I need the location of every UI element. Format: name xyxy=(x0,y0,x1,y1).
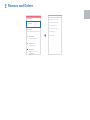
other: Logo xyxy=(5,4,7,8)
staticText: Remove and Delete xyxy=(8,4,34,8)
other: Previous xyxy=(44,34,46,37)
button[interactable] xyxy=(48,15,62,55)
button[interactable]: Logo xyxy=(5,4,34,8)
button[interactable] xyxy=(26,21,41,28)
button[interactable] xyxy=(26,15,41,55)
